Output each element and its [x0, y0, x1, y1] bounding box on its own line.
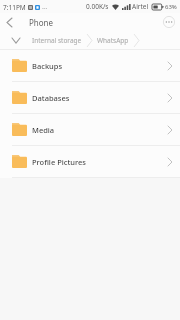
button[interactable]: Media: [0, 114, 180, 145]
button[interactable]: Profile Pictures: [0, 146, 180, 177]
staticText: 63%: [165, 3, 177, 11]
button[interactable]: Show storage list: [0, 31, 32, 49]
staticText: Databases: [32, 93, 70, 103]
staticText: WhatsApp: [97, 36, 129, 45]
staticText: …: [42, 2, 48, 12]
staticText: Backups: [32, 61, 63, 71]
staticText: Phone: [29, 17, 54, 28]
staticText: 0.00K/s: [86, 2, 109, 11]
button[interactable]: More options: [162, 15, 176, 29]
button[interactable]: Backups: [0, 50, 180, 81]
button[interactable]: Internal storage: [32, 31, 82, 49]
staticText: Internal storage: [32, 36, 82, 45]
staticText: Profile Pictures: [32, 157, 86, 167]
button[interactable]: Back: [0, 13, 18, 31]
staticText: Media: [32, 125, 55, 135]
button[interactable]: Databases: [0, 82, 180, 113]
button[interactable]: WhatsApp: [97, 31, 129, 49]
staticText: Airtel: [132, 2, 149, 11]
staticText: 7:11PM: [3, 3, 26, 12]
